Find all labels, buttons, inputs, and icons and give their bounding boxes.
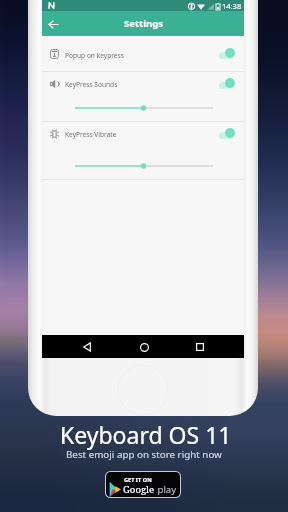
staticText: play [155,483,177,496]
button[interactable]: Home [135,338,153,356]
button[interactable]: KeyPress Vibrate [42,122,244,180]
staticText: KeyPress Vibrate [65,130,117,139]
button[interactable]: Popup on keypress [42,36,244,72]
staticText: 14:38 [222,1,242,11]
staticText: Popup on keypress [65,51,124,60]
button[interactable]: Back [44,15,62,33]
button[interactable]: KeyPress Sounds [42,72,244,122]
staticText: KeyPress Sounds [65,80,118,89]
staticText: Best emoji app on store right now [66,448,222,461]
button[interactable]: Recents [191,338,209,356]
staticText: Google [123,483,155,496]
staticText: GET IT ON [124,476,152,484]
button[interactable]: Back [78,338,96,356]
button[interactable]: Get it on Google Play [105,471,181,498]
staticText: Settings [124,17,163,30]
staticText: Keyboard OS 11 [60,419,232,450]
